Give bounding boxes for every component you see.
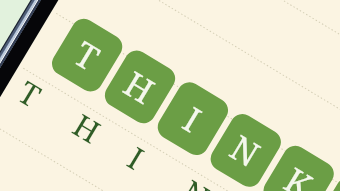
button[interactable]: Word tile game photo xyxy=(0,0,340,191)
